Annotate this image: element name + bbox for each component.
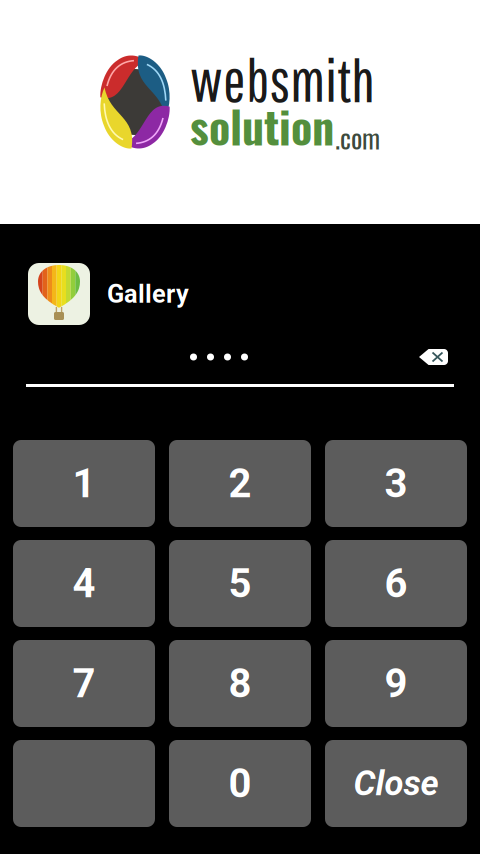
staticText: 7 — [72, 660, 95, 707]
button[interactable]: 4 — [13, 540, 155, 627]
button[interactable]: 2 — [169, 440, 311, 527]
button[interactable]: 8 — [169, 640, 311, 727]
staticText: 0 — [228, 760, 251, 807]
button[interactable]: 9 — [325, 640, 467, 727]
button[interactable]: Delete — [413, 343, 454, 371]
staticText: 9 — [384, 660, 407, 707]
staticText: 5 — [228, 560, 251, 607]
button[interactable]: 7 — [13, 640, 155, 727]
staticText: Close — [353, 763, 438, 804]
staticText: 1 — [72, 460, 95, 507]
button[interactable]: Close — [325, 740, 467, 827]
button[interactable]: 1 — [13, 440, 155, 527]
staticText: websmith — [190, 44, 375, 113]
button[interactable]: 0 — [169, 740, 311, 827]
staticText: Gallery — [107, 279, 189, 309]
button[interactable]: 3 — [325, 440, 467, 527]
staticText: 3 — [384, 460, 407, 507]
staticText: .com — [335, 118, 380, 157]
staticText: 8 — [228, 660, 251, 707]
button[interactable]: 6 — [325, 540, 467, 627]
button[interactable] — [13, 740, 155, 827]
staticText: 6 — [384, 560, 407, 607]
staticText: 4 — [72, 560, 95, 607]
button[interactable]: 5 — [169, 540, 311, 627]
staticText: solution — [190, 93, 334, 158]
staticText: 2 — [228, 460, 251, 507]
